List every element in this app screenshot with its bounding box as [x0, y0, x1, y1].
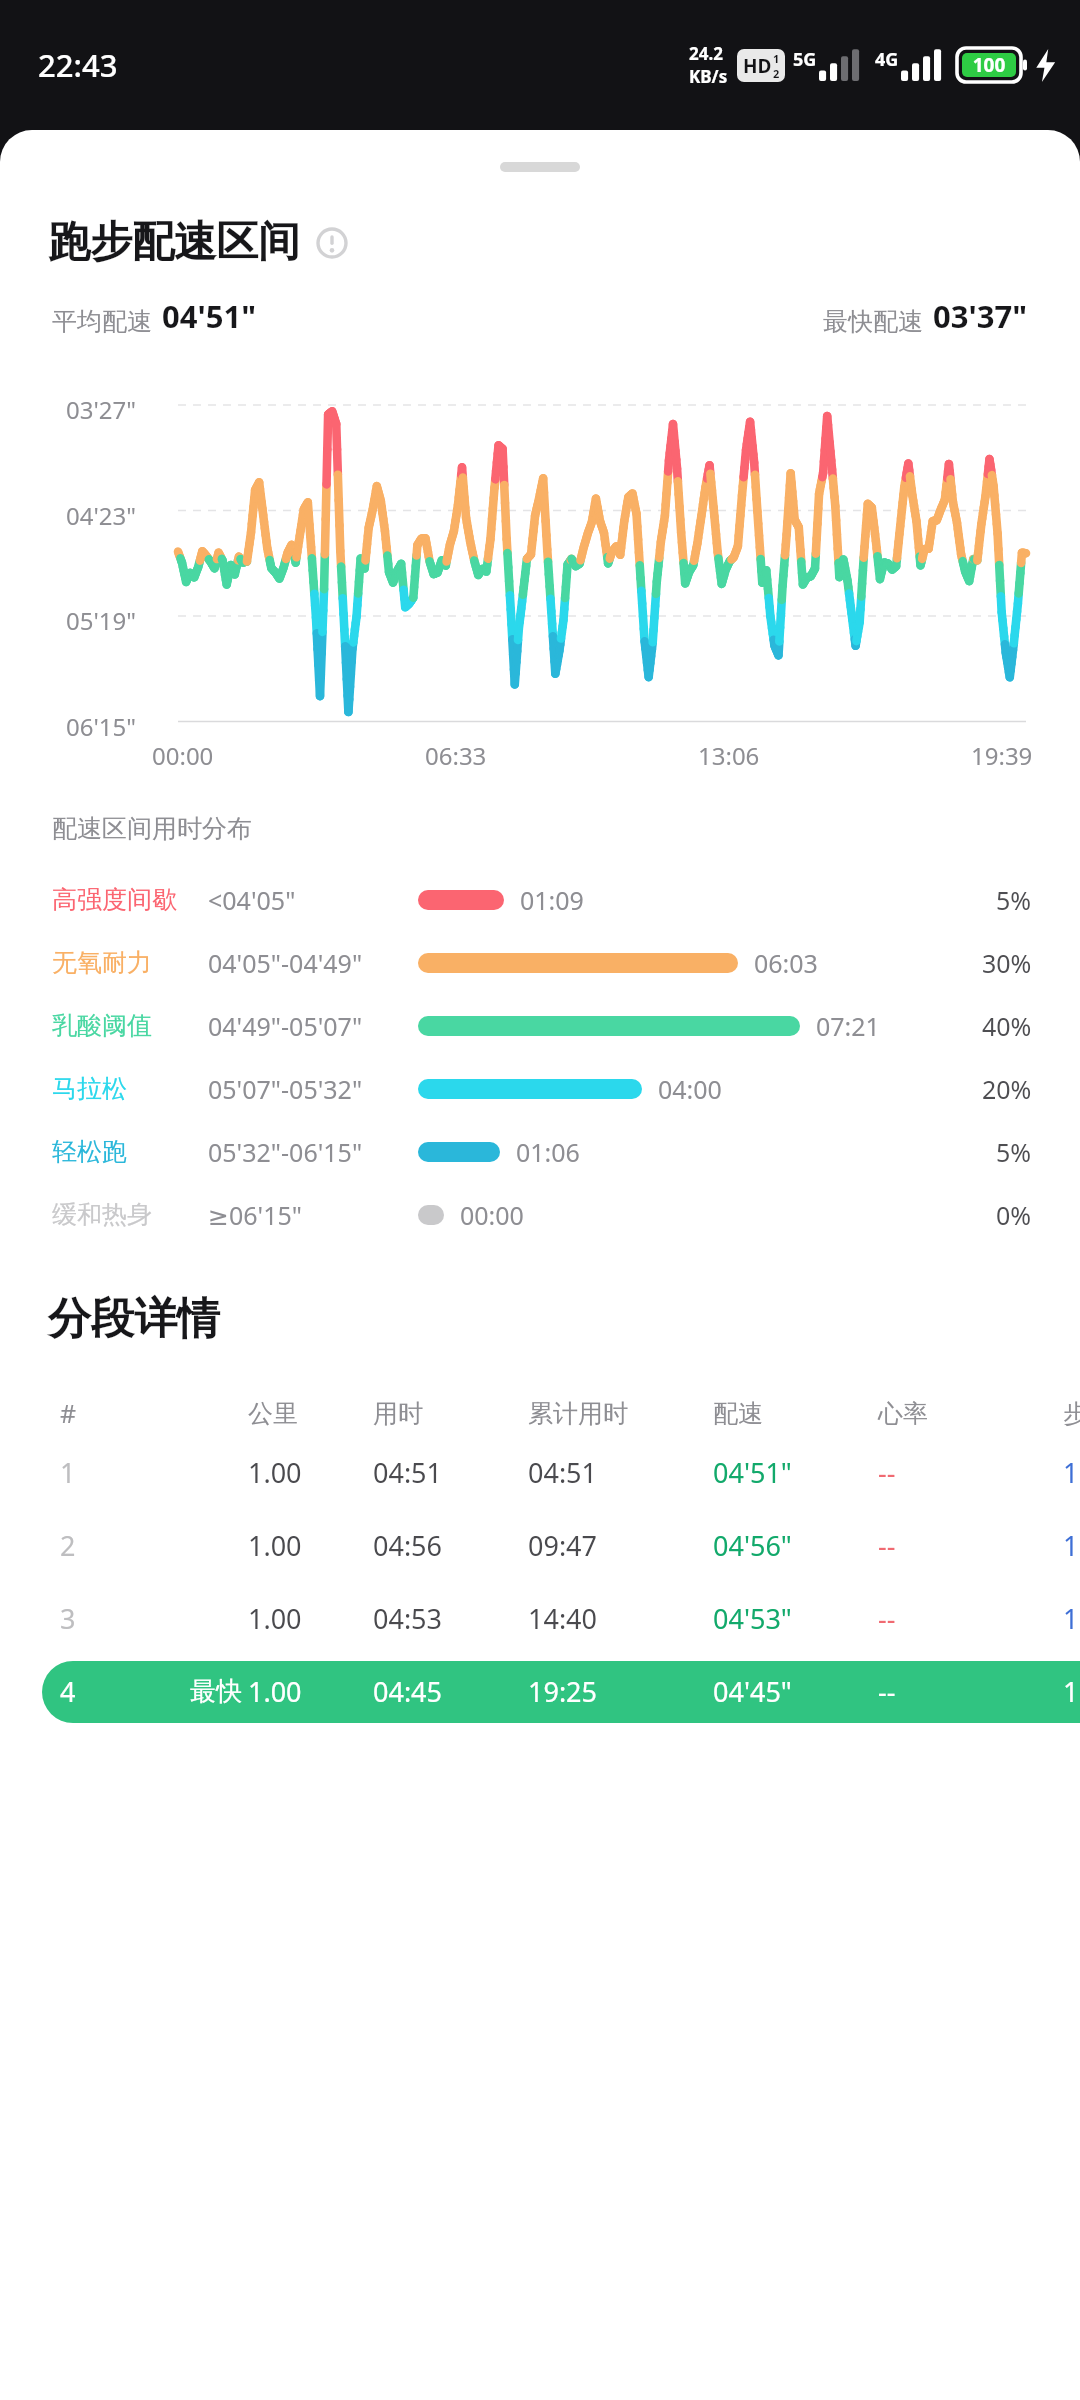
staticText: -- [878, 1600, 896, 1637]
staticText: 1 [60, 1454, 76, 1491]
staticText: 07:21 [816, 1009, 880, 1043]
staticText: 5G [793, 47, 817, 72]
button[interactable]: 轻松跑 [0, 1120, 1080, 1183]
staticText: 0% [996, 1198, 1032, 1232]
staticText: 04:53 [373, 1600, 443, 1637]
staticText: 05'19" [66, 604, 137, 637]
staticText: 1.00 [248, 1527, 302, 1564]
button[interactable]: 配速区间说明 [312, 223, 352, 263]
staticText: 无氧耐力 [52, 947, 152, 978]
staticText: 05'32"-06'15" [208, 1135, 363, 1169]
staticText: 1 [773, 51, 780, 66]
staticText: 04:51 [528, 1454, 598, 1491]
staticText: 轻松跑 [52, 1136, 127, 1167]
staticText: 缓和热身 [52, 1199, 152, 1230]
staticText: 01:06 [516, 1135, 580, 1169]
staticText: 15 [1063, 1527, 1080, 1564]
staticText: 平均配速 [52, 306, 152, 337]
staticText: -- [878, 1527, 896, 1564]
button[interactable]: 2 [0, 1509, 1080, 1582]
staticText: 5% [996, 1135, 1032, 1169]
staticText: 5% [996, 883, 1032, 917]
button[interactable]: 高强度间歇 [0, 868, 1080, 931]
staticText: 1.00 [248, 1600, 302, 1637]
staticText: 24.2 [689, 42, 723, 65]
button[interactable]: 缓和热身 [0, 1183, 1080, 1246]
staticText: 04'05"-04'49" [208, 946, 363, 980]
staticText: 14:40 [528, 1600, 598, 1637]
staticText: 最快 [190, 1675, 242, 1708]
staticText: 03'27" [66, 393, 137, 426]
staticText: <04'05" [208, 883, 296, 917]
staticText: 3 [60, 1600, 76, 1637]
staticText: -- [878, 1673, 896, 1710]
staticText: 03'37" [933, 295, 1028, 337]
staticText: 00:00 [460, 1198, 524, 1232]
staticText: 2 [60, 1527, 76, 1564]
staticText: 00:00 [152, 739, 214, 772]
staticText: 步 [1063, 1398, 1080, 1429]
button[interactable]: 乳酸阈值 [0, 994, 1080, 1057]
staticText: 04'53" [713, 1600, 792, 1637]
staticText: 04:00 [658, 1072, 722, 1106]
staticText: 19:39 [971, 739, 1033, 772]
staticText: 05'07"-05'32" [208, 1072, 363, 1106]
staticText: 分段详情 [48, 1292, 220, 1346]
staticText: 06:33 [425, 739, 487, 772]
staticText: 20% [982, 1072, 1032, 1106]
button[interactable]: 无氧耐力 [0, 931, 1080, 994]
staticText: 心率 [878, 1398, 928, 1429]
staticText: 19:25 [528, 1673, 598, 1710]
staticText: 04'23" [66, 499, 137, 532]
button[interactable]: 1 [0, 1436, 1080, 1509]
staticText: 100 [957, 52, 1021, 78]
staticText: 01:09 [520, 883, 584, 917]
staticText: -- [878, 1454, 896, 1491]
staticText: ≥06'15" [208, 1198, 302, 1232]
staticText: 高强度间歇 [52, 884, 177, 915]
staticText: 06:03 [754, 946, 818, 980]
button[interactable]: 3 [0, 1582, 1080, 1655]
staticText: 16 [1063, 1600, 1080, 1637]
staticText: 跑步配速区间 [48, 216, 300, 269]
staticText: 15 [1063, 1454, 1080, 1491]
staticText: 04'51" [162, 295, 257, 337]
staticText: 30% [982, 946, 1032, 980]
staticText: 04:56 [373, 1527, 443, 1564]
button[interactable]: 马拉松 [0, 1057, 1080, 1120]
staticText: 22:43 [38, 44, 118, 86]
staticText: 15 [1063, 1673, 1080, 1710]
staticText: 4G [875, 47, 899, 72]
staticText: 04:45 [373, 1673, 443, 1710]
staticText: 公里 [248, 1398, 298, 1429]
staticText: 配速 [713, 1398, 763, 1429]
staticText: 04'56" [713, 1527, 792, 1564]
staticText: 04'45" [713, 1673, 792, 1710]
staticText: 40% [982, 1009, 1032, 1043]
staticText: 4 [60, 1673, 76, 1710]
staticText: 2 [773, 66, 780, 81]
staticText: HD [743, 53, 772, 79]
staticText: 配速区间用时分布 [52, 813, 252, 844]
staticText: 06'15" [66, 710, 137, 743]
staticText: KB/s [689, 65, 728, 88]
staticText: # [60, 1396, 77, 1430]
staticText: 09:47 [528, 1527, 598, 1564]
staticText: 最快配速 [823, 306, 923, 337]
staticText: 04:51 [373, 1454, 443, 1491]
staticText: 04'49"-05'07" [208, 1009, 363, 1043]
staticText: 13:06 [698, 739, 760, 772]
button[interactable]: 4 [0, 1655, 1080, 1728]
staticText: 1.00 [248, 1454, 302, 1491]
staticText: 04'51" [713, 1454, 792, 1491]
staticText: 1.00 [248, 1673, 302, 1710]
staticText: 累计用时 [528, 1398, 628, 1429]
staticText: 乳酸阈值 [52, 1010, 152, 1041]
staticText: 用时 [373, 1398, 423, 1429]
staticText: 马拉松 [52, 1073, 127, 1104]
